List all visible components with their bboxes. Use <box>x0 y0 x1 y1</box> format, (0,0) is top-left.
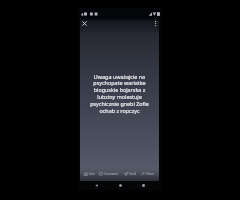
staticText: Share <box>146 172 155 176</box>
button[interactable]: Share <box>141 172 155 176</box>
button[interactable]: Home <box>116 181 125 190</box>
button[interactable]: Comment <box>99 172 119 176</box>
button[interactable]: More options <box>151 19 160 28</box>
staticText: Comment <box>104 172 119 176</box>
button[interactable]: Like <box>84 172 95 176</box>
staticText: Send <box>129 172 137 176</box>
button[interactable]: Close <box>80 19 89 28</box>
button[interactable]: Send <box>124 172 137 176</box>
staticText: Like <box>89 172 95 176</box>
staticText: Uwaga uważajcie na psychopate wariatke b… <box>80 73 159 115</box>
button[interactable]: Recent apps <box>139 181 148 190</box>
button[interactable]: Back <box>92 181 101 190</box>
